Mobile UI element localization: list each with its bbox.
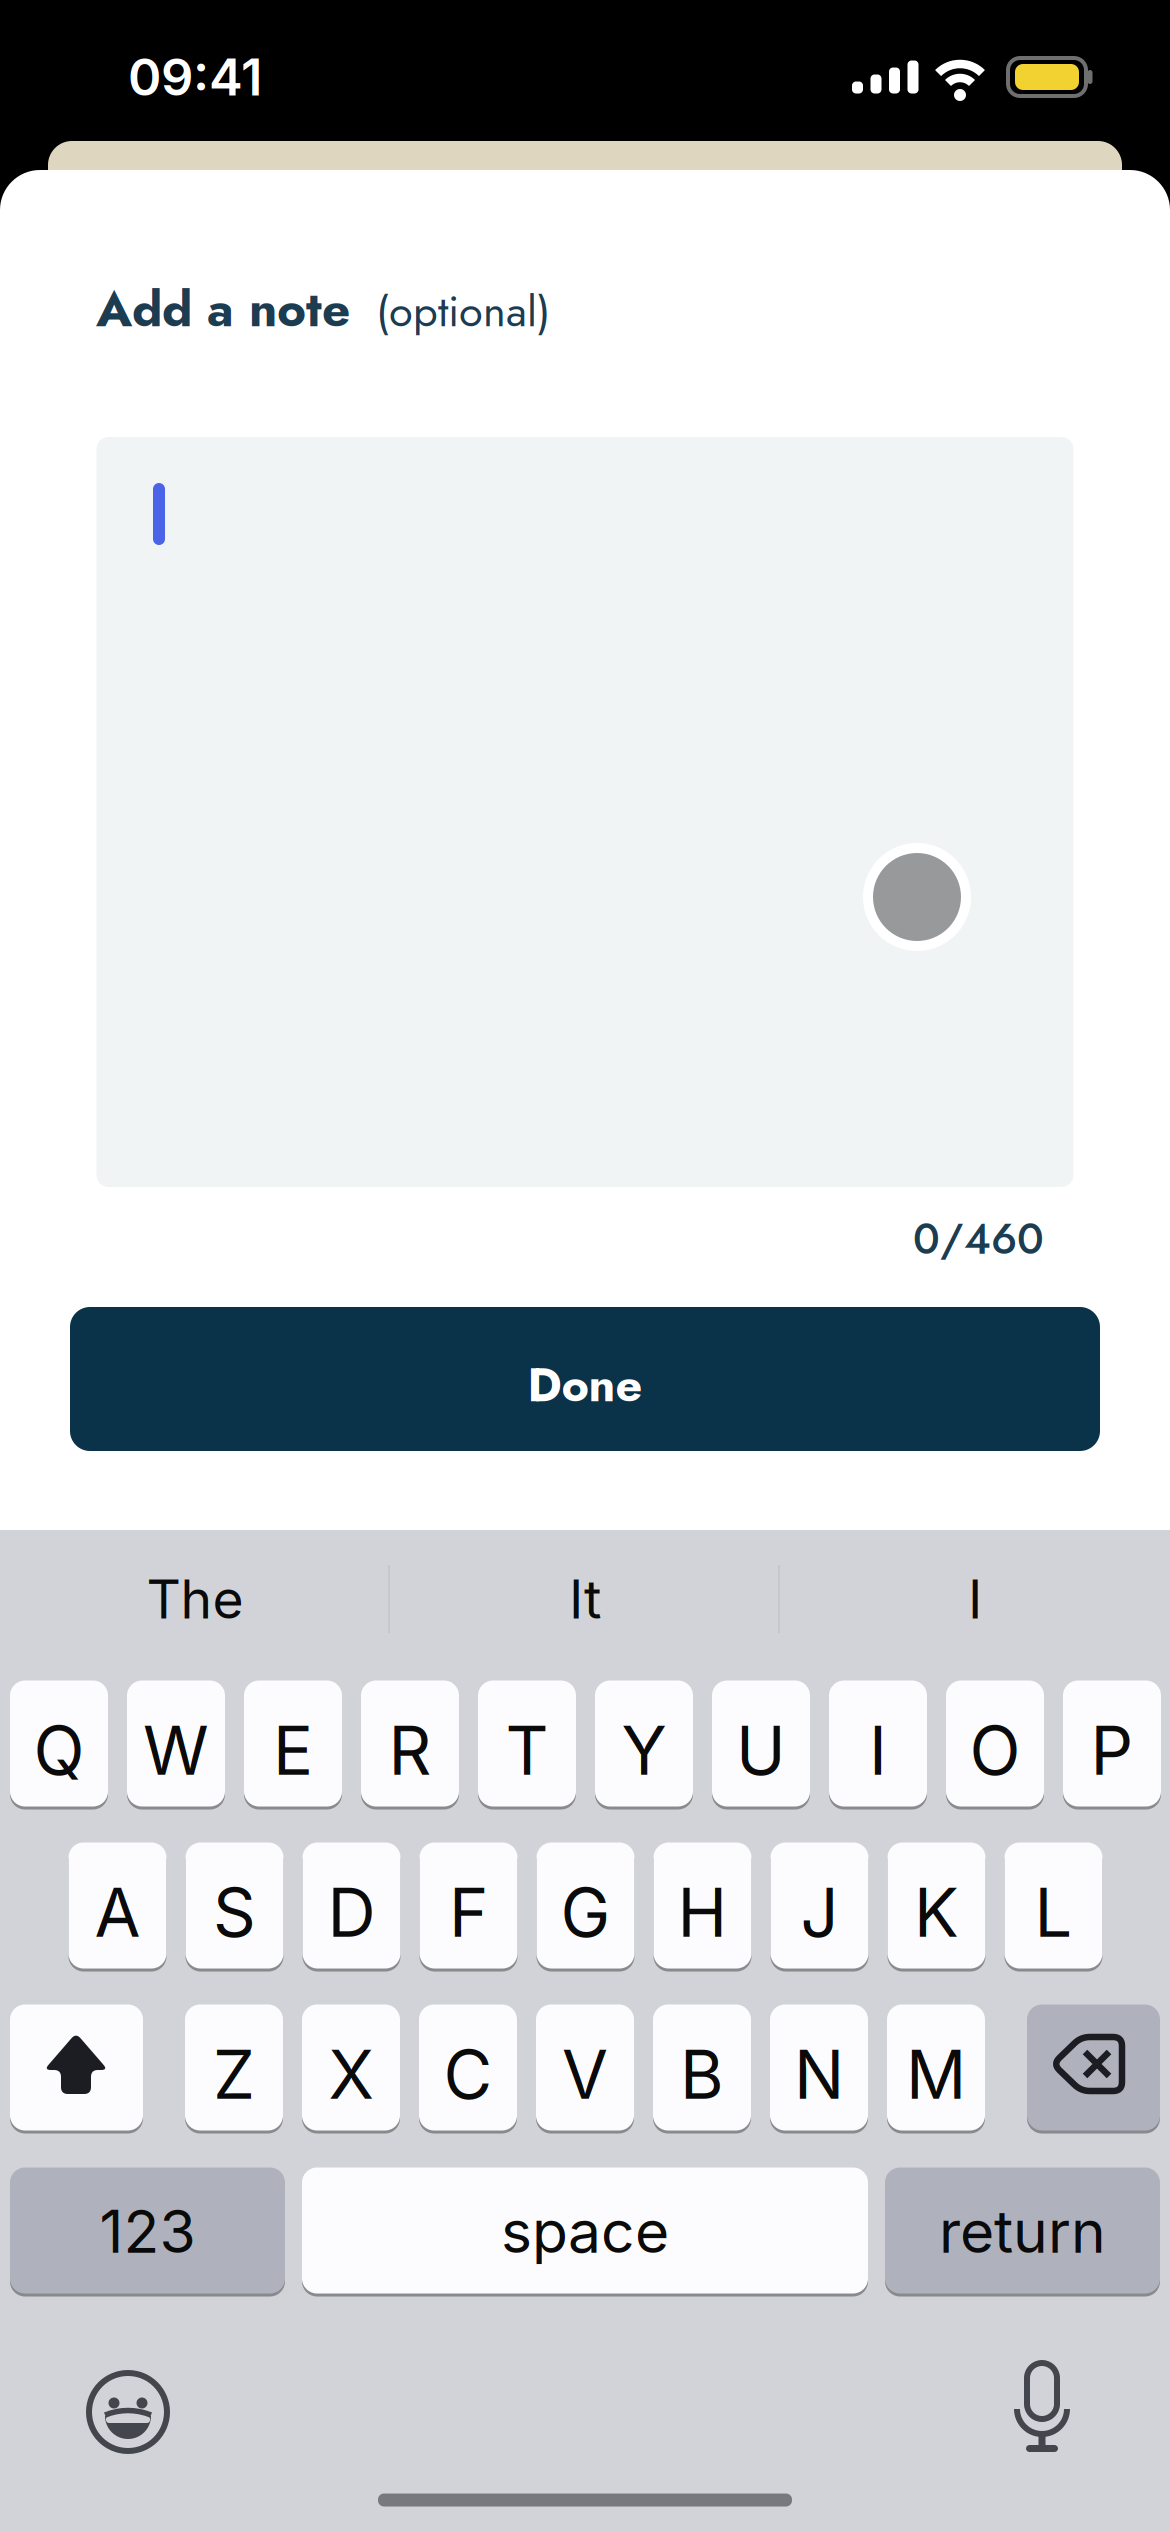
- staticText: E: [273, 1710, 313, 1791]
- button[interactable]: S: [185, 1842, 283, 1971]
- staticText: I: [968, 1567, 982, 1631]
- button[interactable]: O: [946, 1680, 1044, 1809]
- button[interactable]: I: [785, 1539, 1165, 1659]
- staticText: I: [869, 1710, 887, 1791]
- staticText: T: [505, 1710, 548, 1791]
- button[interactable]: V: [536, 2004, 634, 2133]
- staticText: Q: [33, 1710, 84, 1791]
- staticText: Y: [621, 1710, 666, 1791]
- staticText: (optional): [376, 280, 550, 342]
- staticText: O: [969, 1710, 1020, 1791]
- button[interactable]: G: [536, 1842, 634, 1971]
- button[interactable]: M: [887, 2004, 985, 2133]
- staticText: N: [794, 2034, 844, 2115]
- button[interactable]: L: [1004, 1842, 1102, 1971]
- button[interactable]: Note text field: [96, 437, 1073, 1187]
- staticText: A: [94, 1872, 140, 1953]
- staticText: F: [449, 1872, 488, 1953]
- button[interactable]: C: [419, 2004, 517, 2133]
- button[interactable]: D: [302, 1842, 400, 1971]
- staticText: K: [914, 1872, 959, 1953]
- staticText: return: [939, 2196, 1106, 2267]
- staticText: Add a note: [96, 273, 350, 345]
- button[interactable]: Delete: [1027, 2004, 1160, 2133]
- button[interactable]: W: [127, 1680, 225, 1809]
- button[interactable]: Emoji: [88, 2372, 168, 2452]
- button[interactable]: X: [302, 2004, 400, 2133]
- button[interactable]: U: [712, 1680, 810, 1809]
- staticText: L: [1034, 1872, 1072, 1953]
- staticText: space: [501, 2196, 669, 2267]
- staticText: 123: [99, 2196, 195, 2267]
- button[interactable]: K: [887, 1842, 985, 1971]
- button[interactable]: Shift: [10, 2004, 143, 2133]
- button[interactable]: F: [419, 1842, 517, 1971]
- staticText: C: [443, 2034, 492, 2115]
- staticText: X: [328, 2034, 373, 2115]
- button[interactable]: return: [885, 2167, 1160, 2296]
- staticText: It: [569, 1567, 601, 1631]
- button[interactable]: space: [302, 2167, 868, 2296]
- button[interactable]: T: [478, 1680, 576, 1809]
- staticText: G: [560, 1872, 610, 1953]
- button[interactable]: E: [244, 1680, 342, 1809]
- staticText: B: [680, 2034, 724, 2115]
- staticText: Done: [527, 1351, 642, 1419]
- staticText: The: [146, 1567, 243, 1631]
- button[interactable]: The: [5, 1539, 385, 1659]
- button[interactable]: Dictate: [1002, 2365, 1082, 2451]
- button[interactable]: Q: [10, 1680, 108, 1809]
- staticText: V: [562, 2034, 608, 2115]
- staticText: D: [327, 1872, 375, 1953]
- button[interactable]: B: [653, 2004, 751, 2133]
- staticText: 0/460: [913, 1208, 1044, 1270]
- staticText: P: [1090, 1710, 1133, 1791]
- button[interactable]: P: [1063, 1680, 1161, 1809]
- staticText: Z: [213, 2034, 255, 2115]
- button[interactable]: J: [770, 1842, 868, 1971]
- button[interactable]: Z: [185, 2004, 283, 2133]
- staticText: 09:41: [128, 46, 262, 108]
- button[interactable]: R: [361, 1680, 459, 1809]
- button[interactable]: Done: [70, 1307, 1100, 1451]
- button[interactable]: H: [653, 1842, 751, 1971]
- staticText: S: [213, 1872, 256, 1953]
- staticText: H: [677, 1872, 727, 1953]
- staticText: U: [736, 1710, 786, 1791]
- button[interactable]: 123: [10, 2167, 285, 2296]
- staticText: J: [800, 1872, 838, 1953]
- button[interactable]: I: [829, 1680, 927, 1809]
- staticText: R: [388, 1710, 431, 1791]
- button[interactable]: It: [395, 1539, 775, 1659]
- staticText: M: [906, 2034, 966, 2115]
- button[interactable]: Y: [595, 1680, 693, 1809]
- staticText: W: [143, 1710, 209, 1791]
- button[interactable]: A: [68, 1842, 166, 1971]
- button[interactable]: N: [770, 2004, 868, 2133]
